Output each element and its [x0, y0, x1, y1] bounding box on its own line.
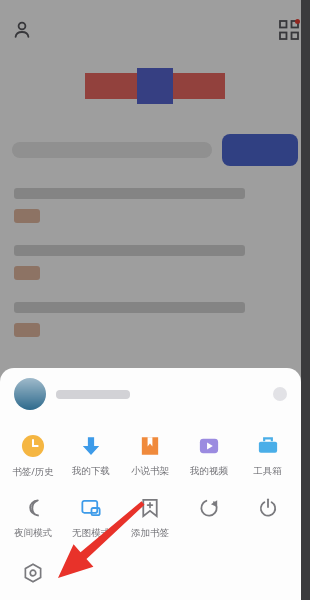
staticText: 书签/历史	[12, 465, 54, 478]
button[interactable]: 我的视频	[179, 430, 238, 481]
button[interactable]: 添加书签	[120, 492, 179, 543]
button[interactable]: 书签/历史	[4, 430, 62, 482]
staticText: 小说书架	[131, 465, 169, 477]
button[interactable]: 按钮	[238, 492, 297, 543]
button[interactable]: 设置	[18, 558, 48, 588]
button[interactable]: 小说书架	[120, 430, 179, 481]
staticText: 无图模式	[72, 527, 110, 539]
staticText: 添加书签	[131, 527, 169, 539]
button[interactable]	[0, 368, 301, 420]
button[interactable]: 按钮	[179, 492, 238, 543]
staticText: 夜间模式	[14, 527, 52, 539]
staticText: 我的视频	[190, 465, 228, 477]
button[interactable]: 工具箱	[238, 430, 297, 481]
staticText: 我的下载	[72, 465, 110, 477]
button[interactable]: 我的下载	[62, 430, 120, 481]
button[interactable]: 无图模式	[62, 492, 120, 543]
staticText: 工具箱	[253, 465, 282, 477]
button[interactable]: 夜间模式	[4, 492, 62, 543]
